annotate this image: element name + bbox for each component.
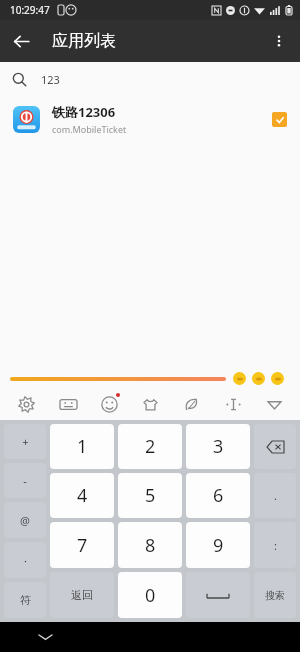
button[interactable]: Themes [135,389,165,419]
staticText: com.MobileTicket [52,123,127,135]
staticText: : [274,538,277,553]
button[interactable]: · [4,542,46,578]
button[interactable]: 0 [118,572,182,618]
staticText: 1 [77,434,88,459]
button[interactable]: 搜索 [254,572,296,618]
button[interactable]: Selected [272,112,287,127]
button[interactable]: Handwriting [176,389,206,419]
button[interactable]: Badge [233,372,246,385]
button[interactable]: 6 [186,473,250,518]
staticText: - [23,473,27,488]
button[interactable]: + [4,424,46,459]
button[interactable]: . [254,473,296,518]
staticText: 0 [145,583,156,608]
button[interactable]: 返回 [50,572,114,618]
button[interactable]: Space [186,572,250,618]
staticText: 9 [213,533,224,558]
button[interactable]: : [254,522,296,568]
button[interactable]: 7 [50,522,114,568]
staticText: 7 [77,533,88,558]
button[interactable]: 9 [186,522,250,568]
button[interactable]: 铁路12306 [0,96,300,142]
button[interactable]: 符 [4,582,46,618]
staticText: + [22,434,29,449]
button[interactable]: 8 [118,522,182,568]
button[interactable]: Badge [252,372,265,385]
button[interactable]: Emoji [94,389,124,419]
staticText: 8 [145,533,156,558]
staticText: @ [20,513,30,528]
staticText: 搜索 [265,589,285,602]
staticText: 铁路12306 [52,103,116,121]
button[interactable]: Back [0,20,42,62]
button[interactable]: Keyboard [53,389,83,419]
button[interactable]: More options [258,20,300,62]
button[interactable]: 3 [186,424,250,469]
button[interactable]: 2 [118,424,182,469]
button[interactable]: Text edit [218,389,248,419]
button[interactable]: @ [4,502,46,538]
staticText: 3 [213,434,224,459]
button[interactable]: Badge [271,372,284,385]
staticText: 2 [145,434,156,459]
staticText: 5 [145,483,156,508]
staticText: 6 [213,483,224,508]
button[interactable]: Settings [11,389,41,419]
button[interactable]: 123 [0,62,300,96]
button[interactable]: - [4,463,46,498]
staticText: . [274,488,277,503]
staticText: 应用列表 [52,31,116,51]
staticText: 符 [20,593,31,607]
staticText: 123 [41,72,60,87]
staticText: 4 [77,483,88,508]
button[interactable]: 4 [50,473,114,518]
staticText: 10:29:47 [10,3,50,17]
button[interactable]: Hide keyboard [30,622,60,652]
staticText: 返回 [71,588,93,602]
staticText: · [24,553,27,568]
button[interactable]: 1 [50,424,114,469]
button[interactable]: Hide keyboard [259,389,289,419]
button[interactable]: Backspace [254,424,296,469]
button[interactable]: 5 [118,473,182,518]
